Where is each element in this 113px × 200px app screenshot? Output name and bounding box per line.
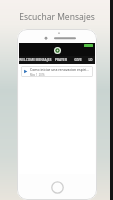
button[interactable]: LO bbox=[86, 56, 95, 64]
button[interactable]: App logo bbox=[54, 47, 61, 54]
staticText: May 1, 2016 bbox=[30, 73, 45, 77]
staticText: PRAYER bbox=[55, 58, 67, 62]
staticText: LO bbox=[88, 58, 93, 62]
staticText: Como iniciar una renovacion espiri... bbox=[30, 67, 89, 72]
staticText: WELCOME bbox=[19, 58, 35, 62]
staticText: MENSAJES bbox=[35, 58, 52, 62]
button[interactable]: PRAYER bbox=[52, 56, 69, 64]
staticText: Escuchar Mensajes bbox=[19, 11, 95, 23]
other: Play bbox=[23, 69, 28, 74]
button[interactable]: MENSAJES bbox=[35, 56, 52, 64]
button[interactable]: Play bbox=[21, 66, 93, 77]
button[interactable]: WELCOME bbox=[19, 56, 35, 64]
button[interactable]: GIVE bbox=[69, 56, 86, 64]
staticText: GIVE bbox=[74, 58, 82, 62]
button[interactable]: Home bbox=[51, 181, 64, 194]
